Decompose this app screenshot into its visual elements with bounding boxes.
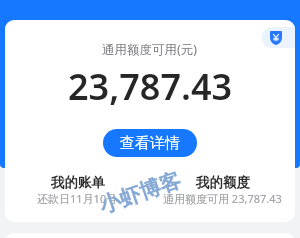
staticText: 小虾博客 bbox=[96, 167, 184, 219]
button[interactable]: 我的额度 bbox=[150, 166, 295, 222]
button[interactable]: 我的账单 bbox=[5, 166, 150, 222]
staticText: 查看详情 bbox=[120, 134, 180, 153]
staticText: 23,787.43 bbox=[68, 62, 233, 111]
staticText: 我的账单 bbox=[51, 174, 105, 191]
button[interactable]: Security center bbox=[262, 27, 295, 48]
staticText: 还款日11月10号 bbox=[37, 191, 118, 206]
staticText: 我的额度 bbox=[196, 174, 250, 191]
staticText: 通用额度可用(元) bbox=[102, 41, 198, 58]
staticText: 通用额度可用 23,787.43 bbox=[163, 191, 282, 206]
button[interactable]: 查看详情 bbox=[103, 129, 197, 157]
